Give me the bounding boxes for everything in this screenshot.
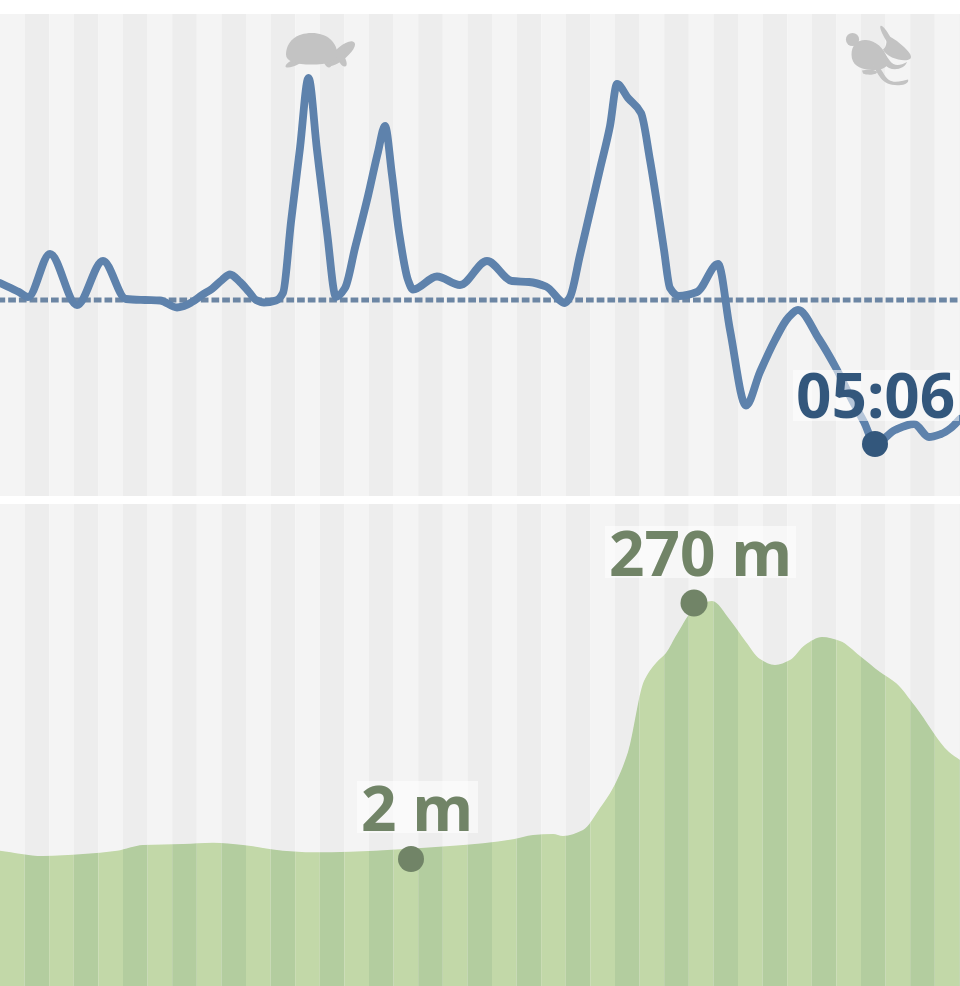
button[interactable]: Elevation chart, from 2 metres up to 270… — [0, 504, 960, 986]
button[interactable]: Pace chart, average 5 minutes 6 seconds … — [0, 0, 960, 496]
